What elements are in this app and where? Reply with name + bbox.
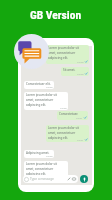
staticText: 10:30: [46, 85, 53, 88]
staticText: GB Version: [30, 8, 82, 21]
staticText: Adipiscing amet.: [26, 151, 50, 155]
staticText: Sit amet.: [63, 68, 76, 72]
staticText: 10:31: [77, 138, 84, 141]
button[interactable]: Consectetuer.: [57, 111, 88, 120]
staticText: Type a message: [30, 177, 54, 181]
other: App logo: [14, 34, 49, 69]
staticText: 10:31: [76, 116, 83, 119]
staticText: Lorem ipsum dolor sit amet, consectetuer…: [26, 93, 57, 107]
button[interactable]: Lorem ipsum dolor sit amet, consectetuer…: [46, 125, 89, 142]
staticText: 10:30: [60, 106, 67, 109]
button[interactable]: Type a message: [23, 175, 78, 183]
button[interactable]: Consectetuer elit.: [24, 81, 54, 89]
button[interactable]: Lorem ipsum dolor sit amet, consectetuer…: [24, 161, 68, 177]
staticText: Lorem ipsum dolor sit amet, consectetuer…: [48, 126, 79, 140]
button[interactable]: Lorem ipsum dolor sit amet, consectetuer…: [24, 92, 68, 110]
button[interactable]: Record voice message: [80, 175, 88, 183]
staticText: Consectetuer elit.: [26, 82, 51, 86]
staticText: 10:30: [77, 72, 84, 75]
staticText: Lorem ipsum dolor sit amet, consectetuer…: [26, 162, 57, 176]
staticText: 10:30: [46, 154, 53, 157]
button[interactable]: Adipiscing amet.: [24, 150, 54, 158]
button[interactable]: Lorem ipsum dolor sit amet, consectetuer…: [46, 45, 89, 64]
staticText: Lorem ipsum dolor sit amet, consectetuer…: [48, 46, 79, 60]
button[interactable]: Sit amet.: [61, 67, 89, 76]
staticText: Consectetuer.: [59, 112, 79, 116]
staticText: 10:30: [77, 60, 84, 63]
